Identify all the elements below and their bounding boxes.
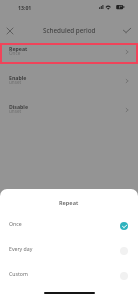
staticText: Once xyxy=(9,50,21,56)
staticText: Enable xyxy=(9,74,27,81)
staticText: Custom xyxy=(9,270,120,277)
staticText: Every day xyxy=(9,245,120,252)
staticText: Repeat xyxy=(59,199,79,207)
button[interactable]: Once xyxy=(0,211,138,236)
button[interactable]: Disable xyxy=(0,95,138,124)
button[interactable]: Enable xyxy=(0,66,138,95)
button[interactable]: Every day xyxy=(0,236,138,261)
staticText: unset xyxy=(9,108,22,114)
staticText: Repeat xyxy=(9,45,28,52)
staticText: Once xyxy=(9,220,120,227)
staticText: Disable xyxy=(9,103,28,110)
button[interactable]: Confirm xyxy=(120,24,134,38)
button[interactable]: Custom xyxy=(0,261,138,286)
staticText: Scheduled period xyxy=(43,26,96,35)
button[interactable]: Close xyxy=(3,24,17,38)
staticText: 13:01 xyxy=(18,4,32,11)
button[interactable]: Repeat xyxy=(0,37,138,66)
staticText: unset xyxy=(9,79,22,85)
